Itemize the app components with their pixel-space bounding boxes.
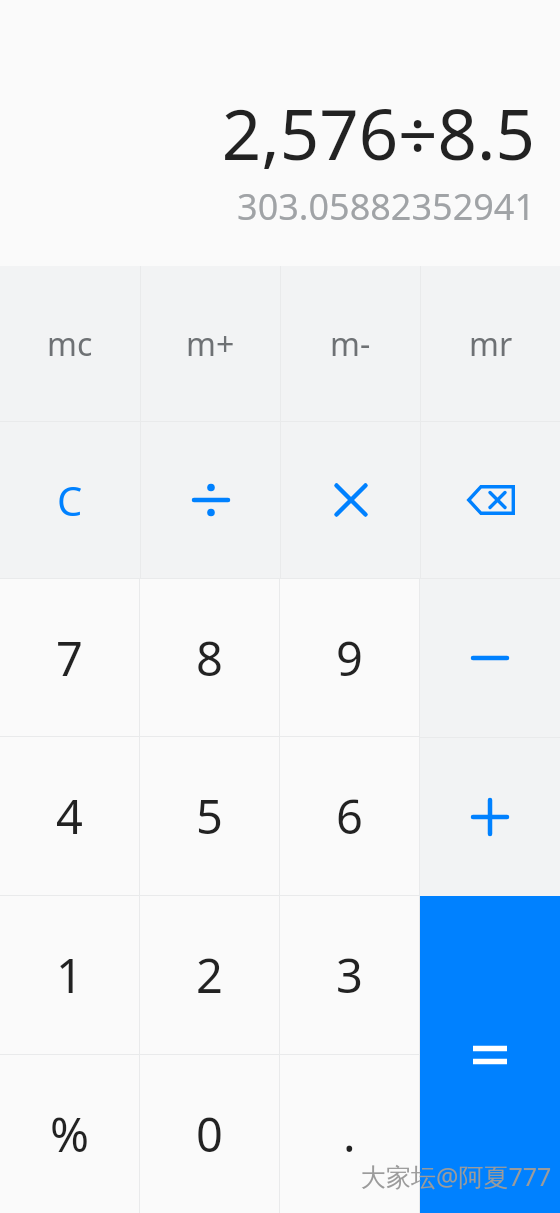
button[interactable]: m+ bbox=[141, 266, 280, 421]
button[interactable]: 4 bbox=[0, 737, 139, 895]
staticText: 1 bbox=[56, 943, 83, 1007]
button[interactable]: mc bbox=[0, 266, 140, 421]
staticText: m- bbox=[330, 322, 371, 366]
staticText: % bbox=[50, 1102, 90, 1166]
button[interactable]: . bbox=[280, 1055, 419, 1213]
button[interactable]: % bbox=[0, 1055, 139, 1213]
staticText: 2 bbox=[196, 943, 223, 1007]
staticText: 8 bbox=[196, 626, 223, 690]
staticText: 303.05882352941 bbox=[237, 182, 535, 231]
staticText: mr bbox=[469, 322, 513, 366]
button[interactable]: 0 bbox=[140, 1055, 279, 1213]
staticText: C bbox=[57, 473, 83, 527]
button[interactable]: 6 bbox=[280, 737, 419, 895]
button[interactable]: Divide bbox=[141, 422, 280, 578]
button[interactable]: Clear bbox=[0, 422, 140, 578]
staticText: . bbox=[343, 1102, 356, 1166]
button[interactable]: 3 bbox=[280, 896, 419, 1054]
staticText: 4 bbox=[56, 784, 83, 848]
button[interactable]: Equals bbox=[420, 896, 560, 1213]
staticText: 6 bbox=[336, 784, 363, 848]
button[interactable]: Add bbox=[420, 738, 560, 896]
staticText: 大家坛@阿夏777 bbox=[361, 1159, 552, 1193]
button[interactable]: Subtract bbox=[420, 579, 560, 737]
staticText: 5 bbox=[196, 784, 223, 848]
staticText: 0 bbox=[196, 1102, 223, 1166]
staticText: 3 bbox=[336, 943, 363, 1007]
button[interactable]: 5 bbox=[140, 737, 279, 895]
button[interactable]: mr bbox=[421, 266, 560, 421]
button[interactable]: m- bbox=[281, 266, 420, 421]
staticText: 7 bbox=[56, 626, 83, 690]
button[interactable]: 8 bbox=[140, 579, 279, 736]
button[interactable]: Backspace bbox=[421, 422, 560, 578]
staticText: mc bbox=[47, 322, 93, 366]
button[interactable]: 9 bbox=[280, 579, 419, 736]
button[interactable]: 2 bbox=[140, 896, 279, 1054]
button[interactable]: Multiply bbox=[281, 422, 420, 578]
button[interactable]: 1 bbox=[0, 896, 139, 1054]
staticText: m+ bbox=[186, 322, 235, 366]
button[interactable]: 7 bbox=[0, 579, 139, 736]
staticText: 9 bbox=[336, 626, 363, 690]
staticText: 2,576÷8.5 bbox=[221, 86, 535, 180]
